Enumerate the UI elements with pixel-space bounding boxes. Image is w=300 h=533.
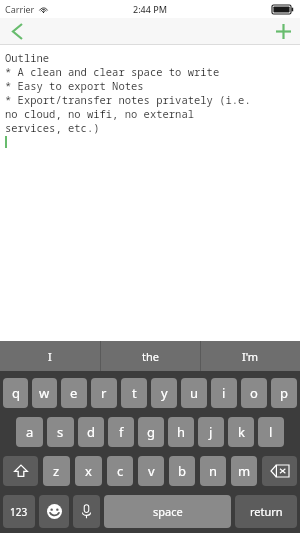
button[interactable]: New note [266,18,300,45]
staticText: o [250,384,258,402]
button[interactable]: t [121,378,147,408]
staticText: 2:44 PM [133,3,167,15]
button[interactable]: o [241,378,267,408]
staticText: a [26,423,34,441]
button[interactable]: 123 [3,495,35,528]
button[interactable]: f [108,417,134,447]
button[interactable]: p [271,378,297,408]
button[interactable]: g [138,417,164,447]
button[interactable]: the [101,341,200,371]
button[interactable]: Dictation [73,495,100,528]
button[interactable]: n [200,456,226,486]
staticText: j [209,423,213,441]
button[interactable]: s [47,417,74,447]
button[interactable]: d [78,417,104,447]
staticText: * A clean and clear space to write [5,65,220,79]
staticText: c [117,462,124,480]
staticText: g [147,423,155,441]
staticText: u [190,384,199,402]
staticText: space [153,504,183,519]
staticText: b [178,462,186,480]
staticText: x [85,462,92,480]
staticText: n [209,462,218,480]
staticText: return [250,504,283,519]
button[interactable]: i [211,378,237,408]
button[interactable]: u [181,378,207,408]
button[interactable]: space [104,495,231,528]
button[interactable]: Shift [3,456,38,486]
button[interactable]: a [16,417,43,447]
button[interactable]: v [138,456,164,486]
staticText: Carrier [5,3,35,15]
staticText: m [238,462,251,480]
staticText: l [269,423,273,441]
button[interactable]: Backspace [262,456,297,486]
button[interactable]: h [168,417,194,447]
button[interactable]: k [228,417,254,447]
button[interactable]: Outline [0,45,300,341]
button[interactable]: c [107,456,133,486]
staticText: I [48,349,52,364]
button[interactable]: w [32,378,57,408]
button[interactable]: r [91,378,117,408]
button[interactable]: j [198,417,224,447]
button[interactable]: m [231,456,257,486]
button[interactable]: y [151,378,177,408]
button[interactable]: l [258,417,284,447]
staticText: z [53,462,60,480]
staticText: y [161,384,168,402]
staticText: v [148,462,155,480]
staticText: 123 [10,505,28,519]
staticText: s [57,423,64,441]
button[interactable]: e [61,378,87,408]
button[interactable]: b [169,456,195,486]
staticText: f [119,423,124,441]
staticText: no cloud, no wifi, no external [5,107,194,121]
button[interactable]: Back [0,18,34,45]
staticText: * Export/transfer notes privately (i.e. [5,93,251,107]
staticText: r [101,384,107,402]
staticText: t [132,384,137,402]
staticText: I'm [242,349,259,364]
staticText: d [87,423,95,441]
staticText: p [280,384,288,402]
button[interactable]: Emoji [39,495,69,528]
staticText: h [177,423,186,441]
staticText: the [142,349,159,364]
button[interactable]: x [75,456,102,486]
staticText: q [12,384,20,402]
staticText: * Easy to export Notes [5,79,144,93]
staticText: i [222,384,226,402]
button[interactable]: return [235,495,297,528]
staticText: services, etc.) [5,121,100,135]
staticText: Outline [5,51,50,65]
button[interactable]: I [0,341,100,371]
staticText: w [39,384,50,402]
button[interactable]: z [43,456,70,486]
button[interactable]: q [3,378,28,408]
staticText: e [70,384,78,402]
staticText: k [238,423,245,441]
button[interactable]: I'm [201,341,300,371]
